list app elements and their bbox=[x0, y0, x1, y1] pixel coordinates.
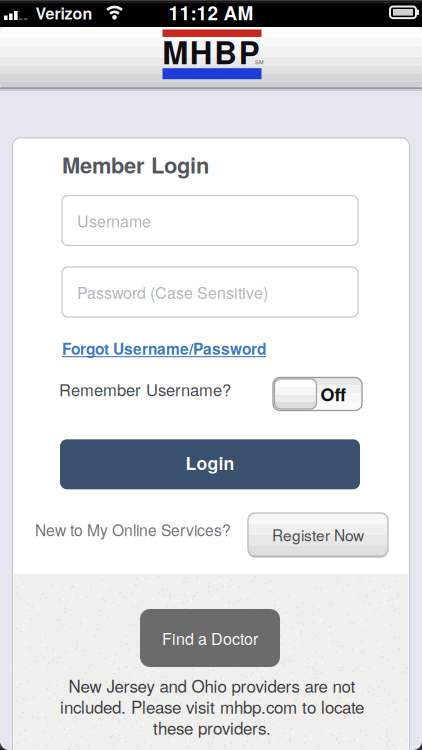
staticText: Login bbox=[185, 450, 234, 475]
staticText: Register Now bbox=[272, 523, 364, 545]
staticText: New to My Online Services? bbox=[35, 518, 231, 541]
staticText: Password (Case Sensitive) bbox=[77, 280, 268, 303]
button[interactable]: Password (Case Sensitive) bbox=[62, 267, 358, 317]
staticText: Off bbox=[320, 381, 345, 407]
staticText: New Jersey and Ohio providers are not bbox=[68, 673, 355, 698]
staticText: included. Please visit mhbp.com to locat… bbox=[60, 694, 364, 719]
staticText: Remember Username? bbox=[59, 377, 231, 401]
staticText: Verizon bbox=[35, 1, 92, 24]
staticText: Member Login bbox=[62, 149, 209, 180]
button[interactable]: Find a Doctor bbox=[140, 609, 280, 667]
staticText: Find a Doctor bbox=[162, 626, 258, 649]
button[interactable]: Forgot Username/Password bbox=[0, 0, 422, 750]
button[interactable]: Register Now bbox=[247, 511, 389, 557]
button[interactable]: Username bbox=[62, 195, 358, 245]
staticText: SM bbox=[255, 58, 263, 66]
button[interactable]: Login bbox=[60, 439, 360, 489]
staticText: 11:12 AM bbox=[168, 0, 253, 26]
button[interactable]: Remember Username toggle, Off bbox=[273, 377, 362, 410]
staticText: Forgot Username/Password bbox=[62, 337, 266, 359]
staticText: MHBP bbox=[162, 29, 260, 74]
staticText: these providers. bbox=[153, 715, 271, 740]
staticText: Username bbox=[77, 209, 151, 232]
